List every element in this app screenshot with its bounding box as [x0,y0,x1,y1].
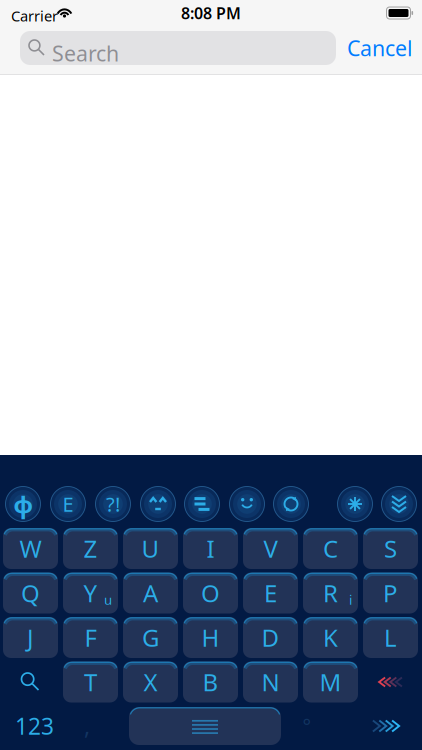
staticText: U [141,533,159,564]
button[interactable]: O [183,572,238,613]
button[interactable]: Punctuation [95,486,130,521]
button[interactable]: Search [20,31,336,65]
staticText: ?! [106,491,120,517]
staticText: R [323,577,338,609]
button[interactable]: Refresh [273,486,308,521]
staticText: B [202,666,218,698]
staticText: Search [52,39,119,67]
button[interactable]: Kaomoji [140,486,175,521]
button[interactable]: C [303,528,358,569]
staticText: 8:08 PM [181,2,241,24]
staticText: F [84,622,96,653]
button[interactable]: Z [63,528,118,569]
button[interactable]: V [243,528,298,569]
staticText: 123 [15,711,54,741]
button[interactable]: Search [3,661,58,702]
button[interactable]: Cancel [347,31,415,65]
staticText: V [263,533,277,564]
staticText: Y [83,577,97,609]
staticText: E [264,577,277,609]
staticText: O [201,577,220,609]
staticText: E [62,491,73,517]
button[interactable]: X [123,661,178,702]
button[interactable]: Next [361,707,411,745]
button[interactable]: N [243,661,298,702]
button[interactable]: Backspace [363,661,418,702]
staticText: H [201,622,219,653]
staticText: D [261,622,279,653]
staticText: W [19,533,41,564]
staticText: Cancel [347,34,413,62]
staticText: M [319,666,341,698]
button[interactable]: Y [63,572,118,613]
button[interactable]: Hide keyboard [381,486,416,521]
button[interactable]: D [243,617,298,658]
staticText: i [349,591,352,608]
button[interactable]: 123 [7,707,62,745]
staticText: L [384,622,397,653]
button[interactable]: K [303,617,358,658]
staticText: Z [83,533,97,564]
staticText: u [104,591,112,608]
staticText: ° [302,713,311,739]
button[interactable]: G [123,617,178,658]
staticText: K [323,622,338,653]
button[interactable]: Cyrillic layout [5,486,40,521]
button[interactable]: W [3,528,58,569]
staticText: J [27,622,34,653]
button[interactable]: Effects [337,486,372,521]
staticText: G [142,622,159,653]
button[interactable]: S [363,528,418,569]
button[interactable]: P [363,572,418,613]
button[interactable]: L [363,617,418,658]
button[interactable]: A [123,572,178,613]
button[interactable]: H [183,617,238,658]
staticText: C [323,533,338,564]
button[interactable]: R [303,572,358,613]
button[interactable]: Emoji [229,486,264,521]
button[interactable]: J [3,617,58,658]
button[interactable]: M [303,661,358,702]
button[interactable]: F [63,617,118,658]
staticText: Q [21,577,40,609]
button[interactable]: Latin layout [50,486,85,521]
button[interactable]: T [63,661,118,702]
staticText: X [143,666,157,698]
staticText: T [84,666,97,698]
staticText: I [206,533,214,564]
button[interactable]: B [183,661,238,702]
staticText: ф [13,488,32,520]
staticText: Carrier [11,6,58,25]
button[interactable]: U [123,528,178,569]
button[interactable]: Space [129,707,281,745]
button[interactable]: I [183,528,238,569]
staticText: N [261,666,279,698]
button[interactable]: E [243,572,298,613]
button[interactable]: Q [3,572,58,613]
staticText: , [84,711,90,741]
button[interactable]: Text alignment [184,486,219,521]
staticText: P [383,577,398,609]
staticText: A [143,577,158,609]
staticText: S [384,533,397,564]
